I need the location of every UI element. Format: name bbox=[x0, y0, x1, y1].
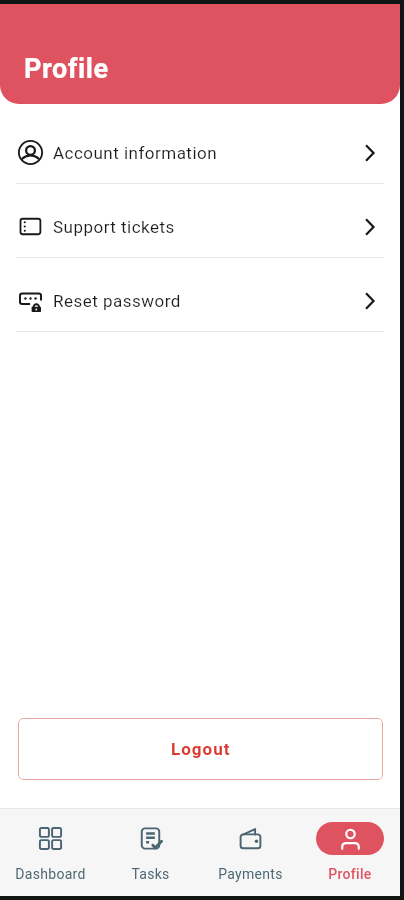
button[interactable]: Support tickets bbox=[0, 196, 400, 257]
button[interactable]: Payments bbox=[200, 808, 300, 896]
button[interactable]: Logout bbox=[18, 718, 383, 780]
button[interactable]: Profile bbox=[300, 808, 400, 896]
button[interactable]: Reset password bbox=[0, 270, 400, 331]
staticText: Profile bbox=[328, 866, 372, 882]
staticText: Profile bbox=[24, 53, 109, 85]
button[interactable]: Dashboard bbox=[0, 808, 100, 896]
button[interactable]: Account information bbox=[0, 122, 400, 183]
button[interactable]: Tasks bbox=[100, 808, 200, 896]
staticText: Tasks bbox=[131, 866, 170, 882]
staticText: Reset password bbox=[53, 291, 181, 311]
staticText: Support tickets bbox=[53, 217, 175, 237]
staticText: Account information bbox=[53, 143, 218, 163]
staticText: Payments bbox=[218, 866, 283, 882]
staticText: Dashboard bbox=[15, 866, 86, 882]
staticText: Logout bbox=[171, 739, 231, 759]
